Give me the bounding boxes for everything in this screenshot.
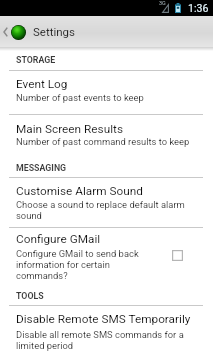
staticText: TOOLS [16, 291, 44, 301]
staticText: STORAGE [16, 55, 56, 65]
staticText: Event Log [16, 77, 68, 91]
staticText: Configure GMail [16, 232, 101, 246]
other: Back [3, 27, 8, 37]
staticText: Disable Remote SMS Temporarily [16, 312, 191, 326]
staticText: Number of past events to keep [16, 92, 144, 103]
button[interactable]: Disable Remote SMS Temporarily [0, 306, 213, 355]
staticText: Choose a sound to replace default alarm … [16, 199, 192, 221]
button[interactable]: Customise Alarm Sound [0, 177, 213, 226]
button[interactable]: Event Log [0, 70, 213, 113]
staticText: 1:36 [188, 2, 209, 14]
staticText: Customise Alarm Sound [16, 184, 143, 198]
staticText: Settings [33, 25, 75, 38]
staticText: MESSAGING [16, 163, 67, 173]
button[interactable]: Back [0, 16, 213, 47]
staticText: Disable all remote SMS commands for a li… [16, 329, 196, 351]
button[interactable]: Configure GMail [0, 227, 213, 288]
staticText: 3G [159, 0, 166, 6]
staticText: Number of past command results to keep [16, 136, 190, 147]
staticText: Main Screen Results [16, 122, 123, 136]
button[interactable]: Main Screen Results [0, 114, 213, 157]
staticText: Configure GMail to send back information… [16, 248, 154, 281]
